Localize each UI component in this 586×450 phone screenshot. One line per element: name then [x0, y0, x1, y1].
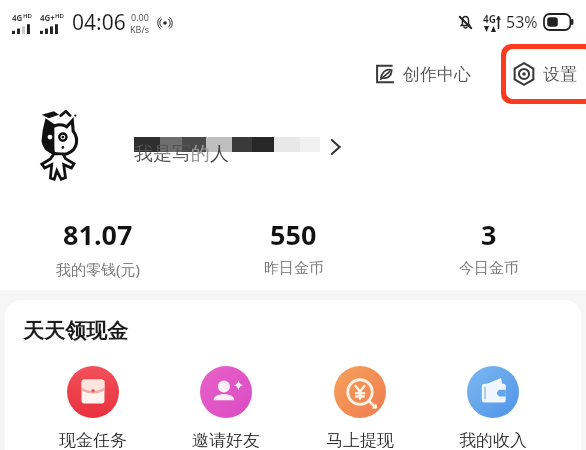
staticText: 04:06 [72, 8, 126, 37]
staticText: 81.07 [63, 216, 133, 253]
staticText: 我的收入 [459, 430, 527, 448]
staticText: HD [23, 12, 32, 20]
button[interactable]: 81.07 [0, 210, 196, 285]
button[interactable]: 现金任务 [47, 364, 139, 450]
staticText: 的 [191, 142, 210, 166]
staticText: 3 [481, 216, 497, 253]
button[interactable]: 我是写 [0, 104, 586, 190]
staticText: 4G [12, 12, 23, 23]
button[interactable]: 我的收入 [447, 364, 539, 450]
staticText: 设置 [543, 64, 577, 85]
staticText: HD [55, 12, 64, 20]
other: 创作中心 [374, 63, 396, 85]
staticText: 我的零钱(元) [56, 259, 141, 279]
staticText: 0.00 [131, 11, 149, 23]
button[interactable]: 设置 [506, 49, 586, 99]
staticText: KB/s [130, 23, 150, 35]
staticText: 创作中心 [403, 64, 471, 85]
staticText: 我是写 [134, 142, 191, 166]
staticText: 人 [210, 142, 229, 166]
staticText: 昨日金币 [264, 259, 324, 278]
staticText: 现金任务 [59, 430, 127, 448]
staticText: 4G+ [40, 12, 55, 23]
staticText: 马上提现 [326, 430, 394, 448]
button[interactable]: 550 [196, 210, 391, 284]
button[interactable]: 创作中心 [368, 57, 477, 91]
staticText: 今日金币 [459, 259, 519, 278]
staticText: 550 [270, 216, 317, 253]
button[interactable]: 马上提现 [314, 364, 406, 450]
staticText: 4G [483, 12, 496, 26]
button[interactable]: 邀请好友 [180, 364, 272, 450]
other: 设置 [512, 62, 536, 86]
staticText: 53% [506, 11, 538, 33]
staticText: 天天领现金 [23, 318, 128, 344]
staticText: 邀请好友 [192, 430, 260, 448]
button[interactable]: 3 [391, 210, 586, 284]
